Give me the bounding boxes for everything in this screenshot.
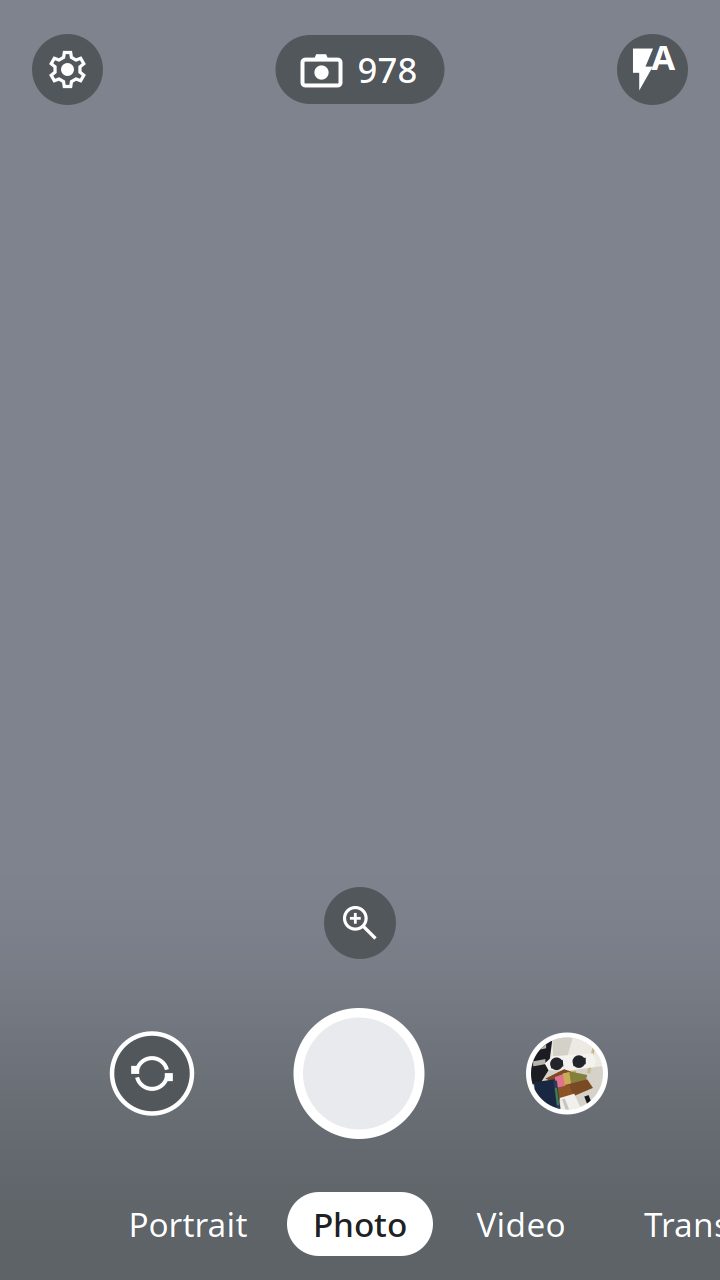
button[interactable]: Portrait: [122, 1192, 254, 1256]
staticText: Portrait: [128, 1202, 247, 1246]
button[interactable]: 978: [275, 35, 444, 104]
button[interactable]: Photo: [287, 1192, 433, 1256]
staticText: A: [651, 33, 675, 79]
staticText: Photo: [313, 1202, 407, 1246]
staticText: Video: [476, 1202, 565, 1246]
button[interactable]: Switch camera: [112, 1033, 192, 1113]
button[interactable]: Flash auto: [617, 34, 688, 105]
button[interactable]: Zoom: [324, 887, 396, 959]
button[interactable]: Shutter: [293, 1008, 424, 1139]
staticText: Transl: [644, 1202, 720, 1246]
button[interactable]: Transl: [644, 1192, 720, 1256]
staticText: 978: [357, 46, 417, 92]
button[interactable]: Settings: [32, 34, 103, 105]
button[interactable]: Gallery: [526, 1032, 608, 1114]
button[interactable]: Video: [466, 1192, 576, 1256]
